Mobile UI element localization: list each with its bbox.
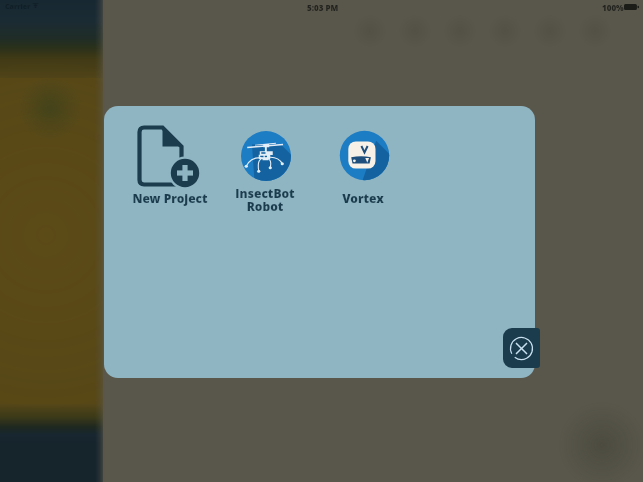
button[interactable]: Vortex xyxy=(317,116,409,212)
button[interactable]: New Project xyxy=(124,116,216,212)
button[interactable]: Close xyxy=(503,328,540,368)
staticText: InsectBot Robot xyxy=(219,185,311,215)
staticText: 100% xyxy=(602,2,624,13)
staticText: New Project xyxy=(124,190,216,206)
staticText: Carrier xyxy=(5,2,31,12)
button[interactable]: InsectBot Robot xyxy=(219,116,311,226)
staticText: 5:03 PM xyxy=(307,2,339,13)
staticText: Vortex xyxy=(317,190,409,206)
